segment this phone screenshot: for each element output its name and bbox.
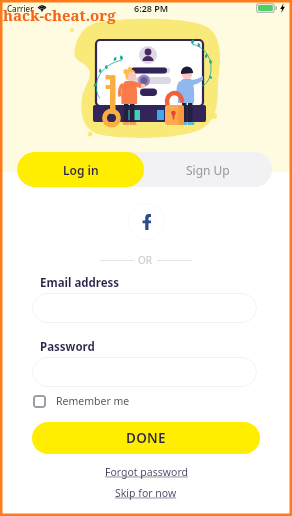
button[interactable]: Log in — [17, 152, 144, 187]
staticText: Remember me — [56, 394, 130, 408]
staticText: Sign Up — [186, 162, 230, 178]
button[interactable] — [32, 357, 257, 387]
staticText: Password — [40, 339, 95, 355]
button[interactable]: Sign in with Facebook — [128, 203, 165, 240]
staticText: 6:28 PM — [134, 2, 169, 14]
button[interactable]: Skip for now — [115, 486, 177, 500]
staticText: Log in — [63, 162, 99, 178]
button[interactable]: DONE — [32, 422, 260, 454]
staticText: hack-cheat.org — [3, 5, 116, 25]
button[interactable] — [32, 293, 257, 323]
staticText: Carrier — [7, 3, 34, 14]
button[interactable]: Sign Up — [144, 152, 272, 187]
button[interactable]: Forgot password — [105, 465, 188, 479]
staticText: OR — [138, 253, 153, 267]
button[interactable]: Remember me — [31, 392, 132, 410]
staticText: DONE — [126, 429, 166, 447]
staticText: Email address — [40, 275, 120, 291]
